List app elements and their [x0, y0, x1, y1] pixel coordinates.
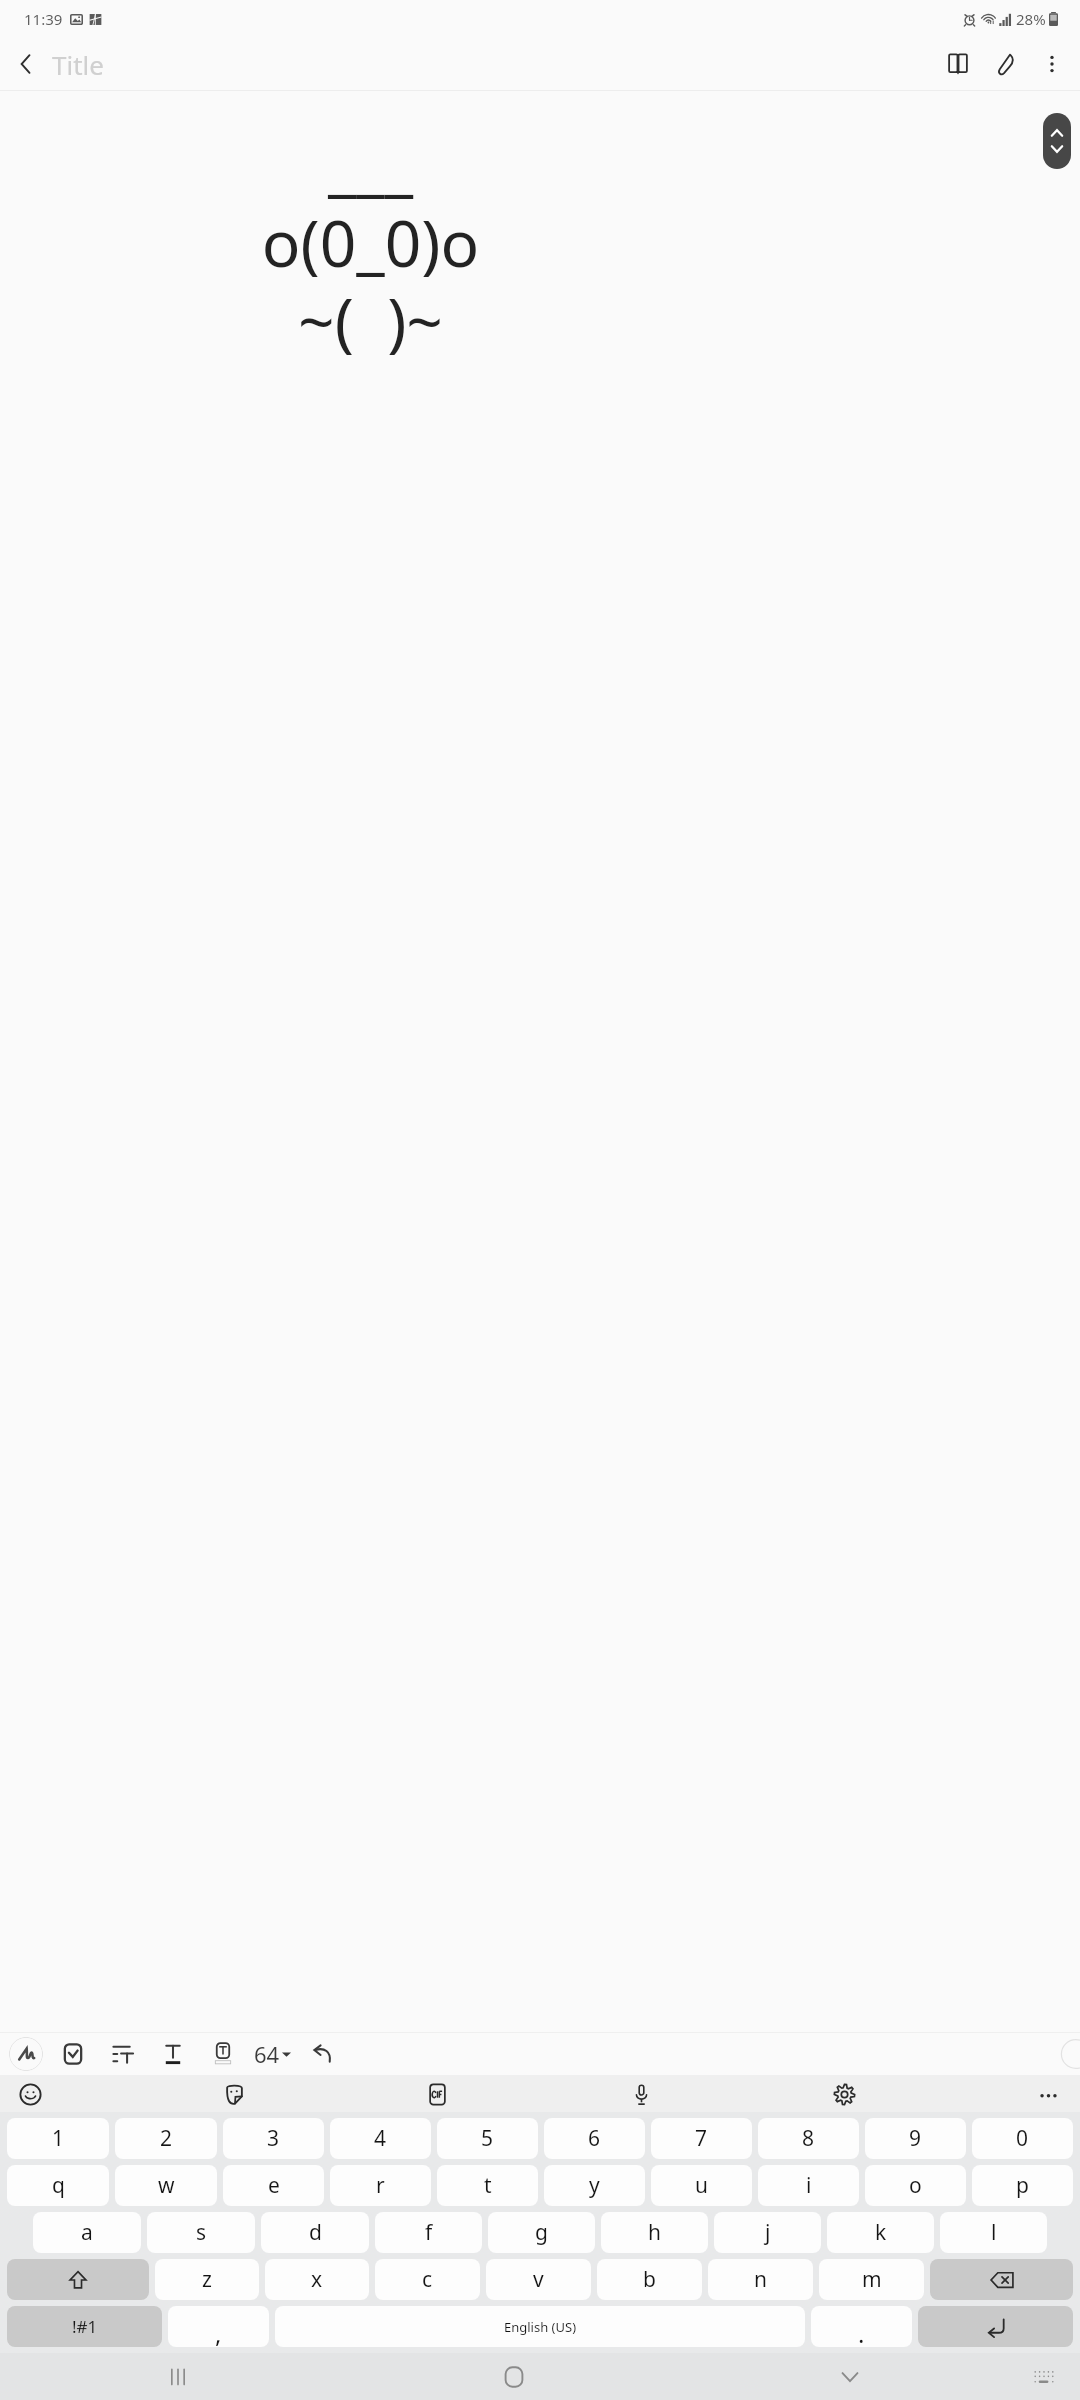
staticText: f: [425, 2218, 433, 2247]
button[interactable]: 64: [254, 2039, 291, 2069]
button[interactable]: q: [7, 2165, 109, 2206]
staticText: 8: [802, 2124, 815, 2153]
staticText: .: [858, 2317, 865, 2347]
button[interactable]: .: [811, 2306, 912, 2347]
staticText: r: [376, 2171, 385, 2200]
button[interactable]: !#1: [7, 2306, 162, 2347]
staticText: !#1: [72, 2315, 98, 2338]
button[interactable]: n: [708, 2259, 813, 2300]
button[interactable]: Stickers: [216, 2076, 252, 2112]
staticText: English (US): [504, 2318, 577, 2336]
staticText: 1: [52, 2124, 65, 2153]
button[interactable]: 2: [115, 2118, 217, 2159]
button[interactable]: Attach: [982, 40, 1030, 88]
button[interactable]: Text style: [156, 2037, 190, 2071]
staticText: t: [484, 2171, 492, 2200]
button[interactable]: Checklist: [56, 2037, 90, 2071]
button[interactable]: j: [714, 2212, 821, 2253]
staticText: 4: [374, 2124, 387, 2153]
button[interactable]: 8: [758, 2118, 859, 2159]
button[interactable]: Undo: [306, 2037, 340, 2071]
staticText: 9: [909, 2124, 922, 2153]
button[interactable]: y: [544, 2165, 645, 2206]
button[interactable]: Enter: [918, 2306, 1073, 2347]
staticText: 28%: [1016, 9, 1046, 29]
button[interactable]: r: [330, 2165, 431, 2206]
button[interactable]: e: [223, 2165, 324, 2206]
staticText: m: [862, 2265, 882, 2294]
button[interactable]: 9: [865, 2118, 966, 2159]
button[interactable]: s: [147, 2212, 255, 2253]
button[interactable]: Recents: [10, 2353, 346, 2400]
button[interactable]: Handwriting: [9, 2037, 43, 2071]
button[interactable]: Shift: [7, 2259, 149, 2300]
staticText: 7: [695, 2124, 708, 2153]
button[interactable]: x: [265, 2259, 369, 2300]
button[interactable]: o: [865, 2165, 966, 2206]
button[interactable]: 6: [544, 2118, 645, 2159]
button[interactable]: More options: [1030, 42, 1074, 86]
button[interactable]: 0: [972, 2118, 1073, 2159]
staticText: b: [643, 2265, 656, 2294]
button[interactable]: p: [972, 2165, 1073, 2206]
staticText: ___ o(0_0)o ~( )~: [10, 121, 731, 364]
staticText: h: [648, 2218, 661, 2247]
button[interactable]: b: [597, 2259, 702, 2300]
button[interactable]: Home: [346, 2353, 682, 2400]
button[interactable]: Hide keyboard: [682, 2353, 1018, 2400]
staticText: o: [909, 2171, 922, 2200]
button[interactable]: a: [33, 2212, 141, 2253]
button[interactable]: 4: [330, 2118, 431, 2159]
staticText: p: [1016, 2171, 1029, 2200]
button[interactable]: Backspace: [930, 2259, 1073, 2300]
button[interactable]: Text background: [206, 2037, 240, 2071]
staticText: j: [765, 2218, 771, 2247]
button[interactable]: f: [375, 2212, 482, 2253]
button[interactable]: Voice input: [623, 2076, 659, 2112]
staticText: i: [806, 2171, 812, 2200]
button[interactable]: l: [940, 2212, 1047, 2253]
button[interactable]: m: [819, 2259, 924, 2300]
button[interactable]: i: [758, 2165, 859, 2206]
button[interactable]: Reading view: [934, 40, 982, 88]
staticText: w: [158, 2171, 175, 2200]
button[interactable]: Paragraph style: [106, 2037, 140, 2071]
button[interactable]: English (US): [275, 2306, 805, 2347]
staticText: z: [202, 2265, 212, 2294]
button[interactable]: t: [437, 2165, 538, 2206]
button[interactable]: Switch keyboard: [1018, 2353, 1070, 2400]
button[interactable]: Scroll: [1043, 113, 1071, 169]
staticText: 3: [267, 2124, 280, 2153]
button[interactable]: More: [1030, 2076, 1066, 2112]
button[interactable]: h: [601, 2212, 708, 2253]
staticText: l: [991, 2218, 997, 2247]
staticText: 6: [588, 2124, 601, 2153]
button[interactable]: 5: [437, 2118, 538, 2159]
button[interactable]: Title: [52, 47, 104, 82]
button[interactable]: g: [488, 2212, 595, 2253]
button[interactable]: GIF: [419, 2076, 455, 2112]
staticText: y: [589, 2171, 600, 2200]
staticText: 64: [254, 2039, 280, 2069]
button[interactable]: 3: [223, 2118, 324, 2159]
button[interactable]: u: [651, 2165, 752, 2206]
button[interactable]: Emoji: [12, 2076, 48, 2112]
button[interactable]: Keyboard settings: [826, 2076, 862, 2112]
button[interactable]: c: [375, 2259, 480, 2300]
button[interactable]: ,: [168, 2306, 269, 2347]
button[interactable]: k: [827, 2212, 934, 2253]
staticText: c: [422, 2265, 433, 2294]
button[interactable]: v: [486, 2259, 591, 2300]
staticText: 11:39: [24, 9, 63, 29]
staticText: x: [311, 2265, 323, 2294]
button[interactable]: z: [155, 2259, 259, 2300]
button[interactable]: w: [115, 2165, 217, 2206]
staticText: s: [196, 2218, 207, 2247]
button[interactable]: Back: [0, 38, 52, 90]
button[interactable]: 7: [651, 2118, 752, 2159]
button[interactable]: d: [261, 2212, 369, 2253]
staticText: u: [695, 2171, 708, 2200]
button[interactable]: 1: [7, 2118, 109, 2159]
staticText: v: [533, 2265, 544, 2294]
staticText: 5: [481, 2124, 494, 2153]
